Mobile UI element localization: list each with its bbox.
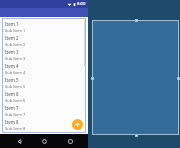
button[interactable]: Back xyxy=(12,134,26,148)
button[interactable]: Home xyxy=(37,134,51,148)
button[interactable]: Item 3 xyxy=(5,48,86,62)
staticText: Item 8 xyxy=(5,119,19,125)
staticText: Item 3 xyxy=(5,49,19,55)
staticText: Item 6 xyxy=(5,91,19,97)
staticText: Sub Item 5 xyxy=(5,84,26,89)
staticText: Item 4 xyxy=(5,63,19,69)
staticText: Item 1 xyxy=(5,21,19,27)
button[interactable]: Item 2 xyxy=(5,34,86,48)
staticText: Sub Item 3 xyxy=(5,56,26,61)
button[interactable]: Item 4 xyxy=(5,62,86,76)
staticText: Item 7 xyxy=(5,105,19,111)
button[interactable]: Item 5 xyxy=(5,76,86,90)
staticText: Sub Item 7 xyxy=(5,112,26,117)
button[interactable]: Item 8 xyxy=(5,118,86,132)
staticText: 8:00 xyxy=(77,1,86,7)
button[interactable]: Item 6 xyxy=(5,90,86,104)
button[interactable]: Item 1 xyxy=(5,20,86,34)
button[interactable]: Selected view xyxy=(92,20,179,135)
button[interactable]: Add xyxy=(72,119,83,130)
staticText: Item 5 xyxy=(5,77,19,83)
staticText: Sub Item 6 xyxy=(5,98,26,103)
staticText: Item 2 xyxy=(5,35,19,41)
staticText: Sub Item 1 xyxy=(5,28,26,33)
staticText: Sub Item 2 xyxy=(5,42,26,47)
staticText: Sub Item 8 xyxy=(5,126,26,131)
button[interactable]: Recents xyxy=(63,134,77,148)
button[interactable]: Item 7 xyxy=(5,104,86,118)
staticText: Sub Item 4 xyxy=(5,70,26,75)
